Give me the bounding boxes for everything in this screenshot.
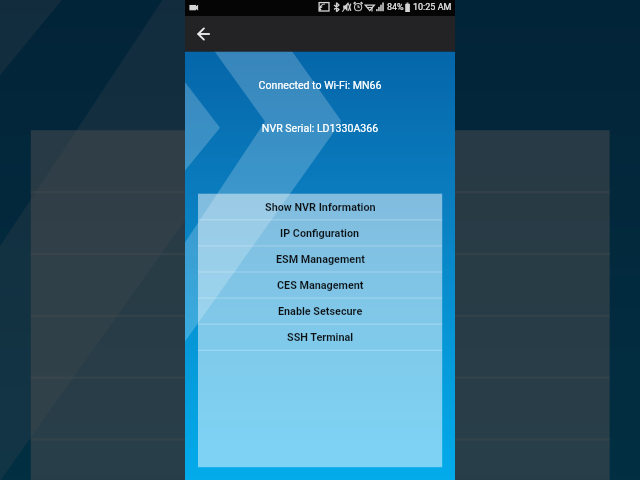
staticText: 84%	[387, 2, 404, 13]
button[interactable]: Enable Setsecure	[198, 298, 442, 324]
button[interactable]: Back	[192, 23, 214, 45]
staticText: Show NVR Information	[265, 201, 376, 214]
staticText: Connected to Wi-Fi: MN66	[185, 79, 455, 91]
staticText: 10:25 AM	[413, 2, 452, 13]
button[interactable]: CES Management	[198, 272, 442, 298]
button[interactable]: IP Configuration	[198, 220, 442, 246]
staticText: CES Management	[277, 279, 364, 292]
button[interactable]: Show NVR Information	[198, 194, 442, 220]
staticText: ESM Management	[276, 253, 365, 266]
staticText: SSH Terminal	[287, 331, 354, 344]
button[interactable]: ESM Management	[198, 246, 442, 272]
button[interactable]: SSH Terminal	[198, 324, 442, 350]
staticText: NVR Serial: LD1330A366	[185, 122, 455, 134]
staticText: Enable Setsecure	[278, 305, 363, 318]
staticText: IP Configuration	[280, 227, 360, 240]
